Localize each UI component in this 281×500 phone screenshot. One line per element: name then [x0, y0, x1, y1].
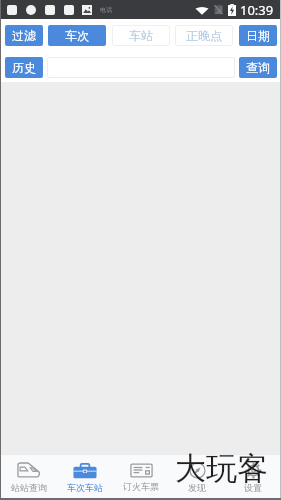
- staticText: 电话: [100, 6, 112, 14]
- button[interactable]: 订火车票: [113, 455, 169, 500]
- staticText: 设置: [244, 482, 262, 493]
- button[interactable]: 查询: [239, 57, 277, 78]
- staticText: 正晚点: [186, 28, 222, 43]
- button[interactable]: 车站: [112, 25, 170, 46]
- button[interactable]: 过滤: [5, 25, 43, 46]
- button[interactable]: 历史: [5, 57, 43, 78]
- staticText: 大玩客: [175, 449, 268, 488]
- button[interactable]: 车次车站: [57, 455, 113, 500]
- staticText: 站站查询: [11, 482, 47, 493]
- staticText: 订火车票: [123, 481, 159, 492]
- button[interactable]: 站站查询: [0, 455, 57, 500]
- staticText: 发现: [188, 482, 206, 493]
- staticText: 查询: [246, 60, 270, 75]
- staticText: 历史: [12, 60, 36, 75]
- staticText: 车站: [129, 28, 153, 43]
- button[interactable]: [47, 57, 235, 78]
- staticText: 10:39: [240, 1, 274, 19]
- staticText: 过滤: [12, 28, 36, 43]
- button[interactable]: 正晚点: [175, 25, 233, 46]
- staticText: 车次: [65, 28, 89, 43]
- button[interactable]: 发现: [169, 455, 225, 500]
- button[interactable]: 日期: [239, 25, 277, 46]
- button[interactable]: 车次: [48, 25, 106, 46]
- staticText: 日期: [246, 28, 270, 43]
- staticText: 车次车站: [67, 482, 103, 493]
- button[interactable]: 设置: [225, 455, 281, 500]
